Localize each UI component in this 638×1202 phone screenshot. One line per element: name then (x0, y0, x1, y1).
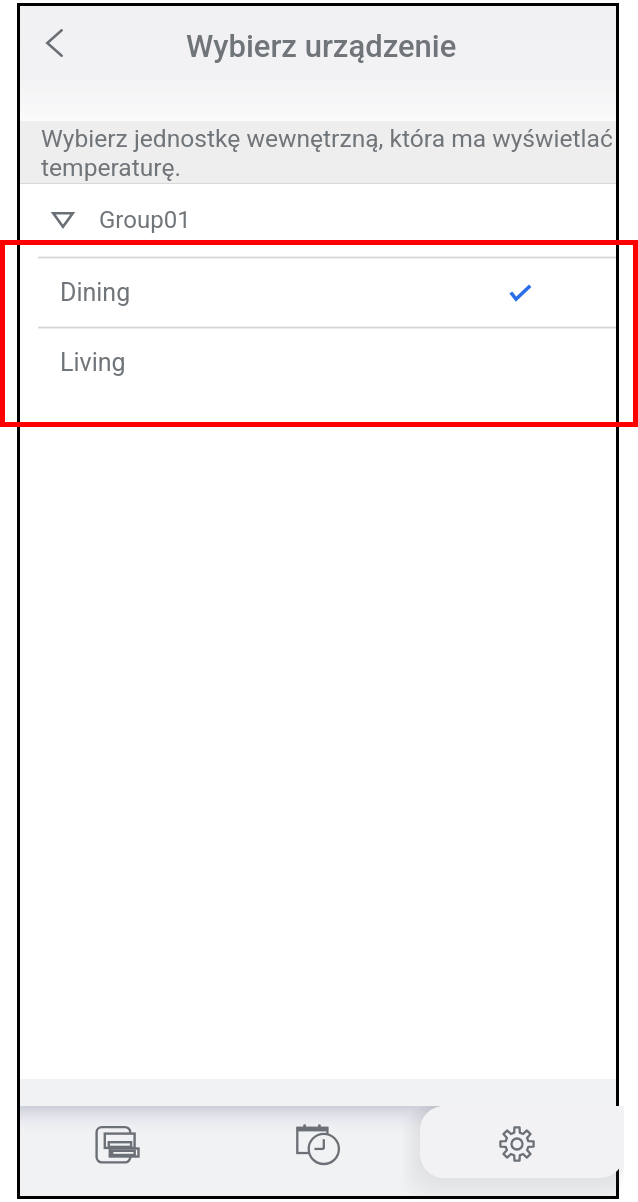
button[interactable]: Schedule (218, 1079, 417, 1196)
staticText: Dining (60, 278, 131, 307)
button[interactable]: Settings (417, 1079, 616, 1196)
button[interactable]: Living (20, 329, 616, 396)
button[interactable]: Group01 (20, 184, 616, 256)
button[interactable]: Dining (20, 259, 616, 326)
staticText: Wybierz urządzenie (186, 28, 457, 64)
staticText: Wybierz jednostkę wewnętrzną, która ma w… (41, 124, 614, 182)
button[interactable]: Back (20, 10, 88, 76)
staticText: Group01 (99, 206, 191, 234)
staticText: Living (60, 348, 126, 377)
button[interactable]: Devices (20, 1079, 218, 1196)
